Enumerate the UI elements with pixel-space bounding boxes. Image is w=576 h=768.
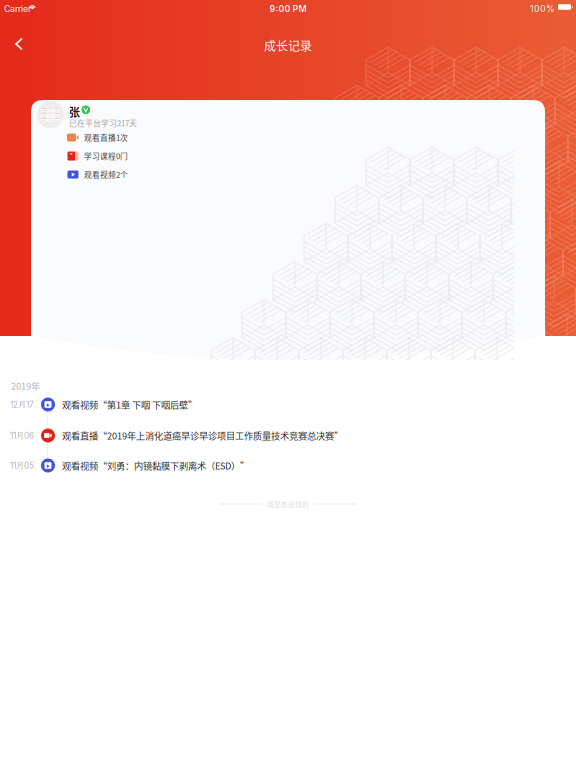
staticText: 观看直播“2019年上消化道癌早诊早诊项目工作质量技术竞赛总决赛” bbox=[62, 429, 343, 442]
button[interactable]: 11月05 bbox=[0, 450, 576, 481]
staticText: 已在平台学习217天 bbox=[69, 117, 137, 128]
staticText: 学习课程0门 bbox=[84, 150, 128, 162]
button[interactable]: 12月17 bbox=[0, 389, 576, 420]
staticText: 观看视频“第1章 下咽 下咽后壁” bbox=[62, 398, 197, 411]
staticText: 观看视频2个 bbox=[84, 169, 128, 180]
staticText: 11月05 bbox=[10, 460, 34, 471]
staticText: 观看视频“刘勇：内镜黏膜下剥离术（ESD）” bbox=[62, 459, 249, 472]
staticText: 观看直播1次 bbox=[84, 132, 128, 143]
staticText: 12月17 bbox=[10, 399, 34, 410]
button[interactable]: 11月06 bbox=[0, 420, 576, 451]
staticText: 我是有底线的 bbox=[267, 499, 309, 509]
staticText: 成长记录 bbox=[264, 37, 312, 54]
staticText: 100% bbox=[530, 4, 555, 14]
button[interactable]: Back bbox=[5, 27, 34, 60]
staticText: Carrier bbox=[4, 4, 31, 14]
staticText: 9:00 PM bbox=[269, 4, 306, 14]
staticText: 2019年 bbox=[11, 379, 40, 392]
staticText: 张 bbox=[69, 104, 80, 120]
staticText: 11月06 bbox=[10, 430, 34, 441]
